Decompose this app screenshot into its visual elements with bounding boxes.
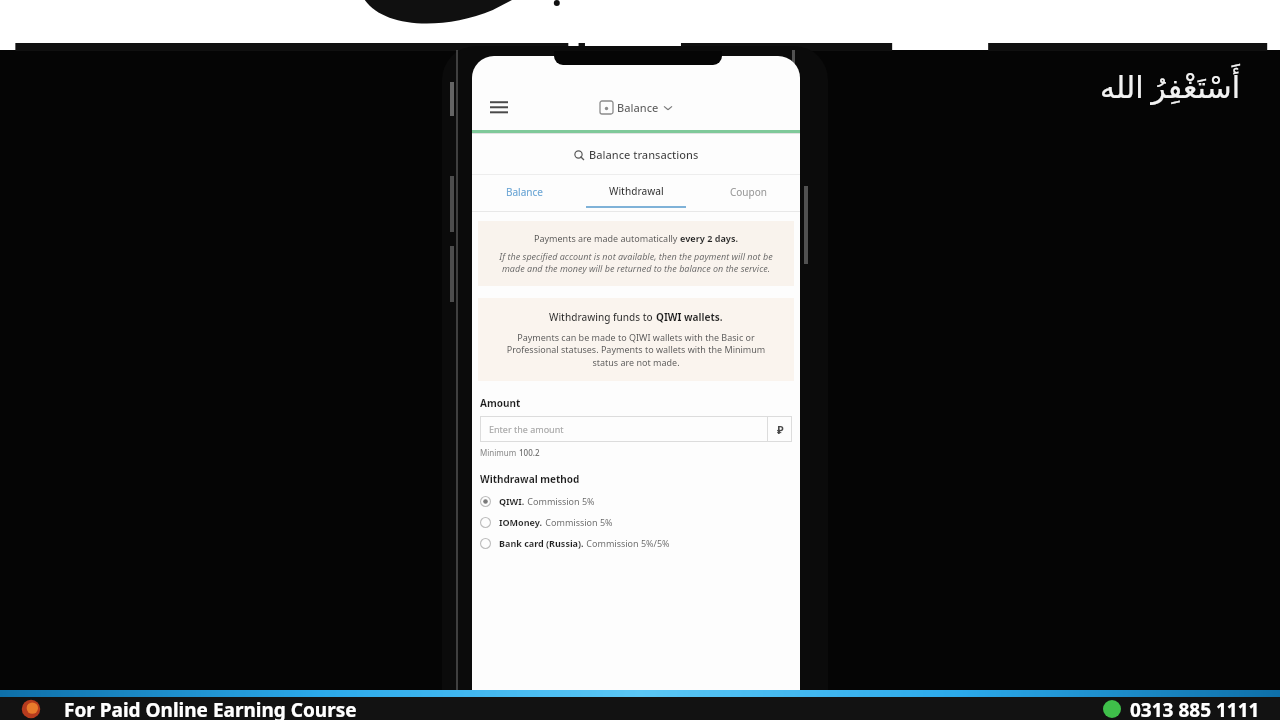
staticText: Enter the amount: [489, 423, 767, 435]
staticText: ₽: [777, 422, 784, 437]
staticText: Balance transactions: [589, 147, 699, 162]
button[interactable]: Balance transactions: [472, 134, 800, 174]
staticText: Withdrawing funds to: [549, 310, 656, 324]
button[interactable]: Menu: [486, 94, 512, 120]
staticText: 0313 885 1111: [1130, 697, 1260, 720]
staticText: Payments can be made to QIWI wallets wit…: [493, 331, 779, 369]
staticText: أَسْتَغْفِرُ الله: [1100, 66, 1241, 107]
button[interactable]: Withdrawal: [576, 175, 696, 211]
staticText: Payments are made automatically: [534, 232, 680, 244]
button[interactable]: Bank card (Russia).: [480, 537, 792, 549]
staticText: Coupon: [730, 185, 767, 199]
staticText: IOMoney.: [499, 516, 543, 528]
staticText: Minimum: [480, 447, 519, 458]
button[interactable]: Enter the amount: [480, 416, 792, 442]
button[interactable]: IOMoney.: [480, 516, 792, 528]
staticText: QIWI.: [499, 495, 525, 507]
staticText: Commission 5%: [543, 516, 613, 528]
staticText: Bank card (Russia).: [499, 537, 584, 549]
staticText: QIWI wallets.: [656, 310, 723, 324]
staticText: Withdrawal method: [480, 472, 580, 486]
staticText: Balance: [617, 100, 659, 115]
button[interactable]: Balance: [600, 100, 672, 115]
staticText: If the specified account is not availabl…: [495, 250, 777, 275]
staticText: 100.2: [519, 447, 540, 458]
staticText: For Paid Online Earning Course: [64, 697, 357, 720]
button[interactable]: QIWI.: [480, 495, 792, 507]
staticText: Withdrawal: [609, 184, 664, 198]
button[interactable]: Balance: [472, 175, 576, 211]
staticText: Balance: [506, 185, 543, 199]
staticText: Commission 5%/5%: [584, 537, 670, 549]
staticText: every 2 days.: [680, 232, 738, 244]
staticText: Commission 5%: [525, 495, 595, 507]
staticText: Amount: [480, 396, 521, 410]
button[interactable]: Coupon: [696, 175, 800, 211]
